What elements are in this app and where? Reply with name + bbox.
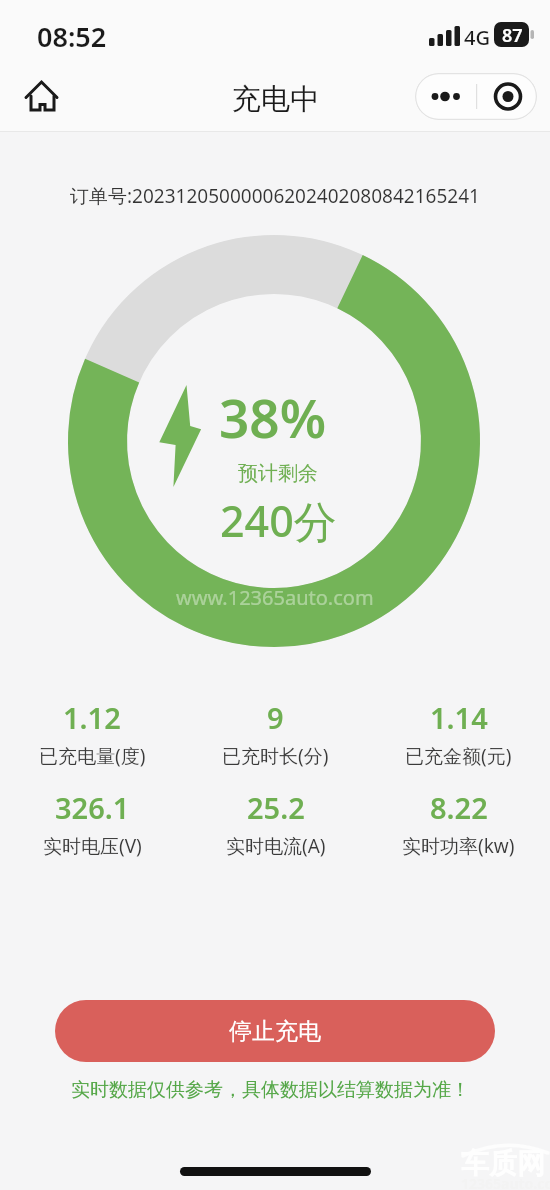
staticText: 预计剩余 — [238, 461, 318, 486]
button[interactable] — [415, 73, 537, 120]
staticText: 4G — [464, 24, 490, 51]
staticText: 实时电压(V) — [43, 833, 142, 859]
staticText: 实时电流(A) — [226, 833, 326, 859]
staticText: 25.2 — [247, 788, 305, 827]
staticText: 已充电量(度) — [39, 743, 146, 769]
staticText: 9 — [267, 698, 284, 737]
button[interactable] — [20, 74, 64, 118]
staticText: 38% — [219, 381, 327, 453]
button[interactable]: 停止充电 — [55, 1000, 495, 1062]
staticText: 1.12 — [63, 698, 121, 737]
staticText: 停止充电 — [229, 1017, 321, 1046]
staticText: 实时功率(kw) — [402, 833, 515, 859]
staticText: 已充时长(分) — [222, 743, 329, 769]
staticText: 87 — [502, 23, 523, 48]
staticText: www.12365auto.com — [176, 584, 374, 611]
staticText: 08:52 — [37, 18, 107, 55]
staticText: 订单号:20231205000006202402080842165241 — [70, 183, 480, 209]
staticText: 已充金额(元) — [405, 743, 512, 769]
staticText: 240分 — [220, 491, 337, 550]
staticText: 充电中 — [232, 81, 319, 118]
staticText: 实时数据仅供参考，具体数据以结算数据为准！ — [71, 1078, 470, 1102]
staticText: 车质网 — [461, 1146, 545, 1181]
staticText: 326.1 — [55, 788, 130, 827]
staticText: 8.22 — [430, 788, 488, 827]
staticText: 1.14 — [430, 698, 488, 737]
